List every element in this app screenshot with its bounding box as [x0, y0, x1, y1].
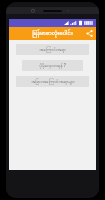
- staticText: ပိုမိုလေ့လာရန် ?: [39, 62, 66, 69]
- staticText: အခြားအကြောင်းအရာများ: [31, 78, 75, 85]
- staticText: မြန်မာစာလုံးပေါင်း: [32, 28, 73, 39]
- staticText: အကြောင်းအရာ: [39, 46, 66, 53]
- button[interactable]: ပိုမိုလေ့လာရန် ?: [22, 60, 83, 71]
- button[interactable]: Share: [83, 27, 96, 40]
- button[interactable]: အခြားအကြောင်းအရာများ: [16, 76, 89, 87]
- button[interactable]: အကြောင်းအရာ: [16, 44, 89, 55]
